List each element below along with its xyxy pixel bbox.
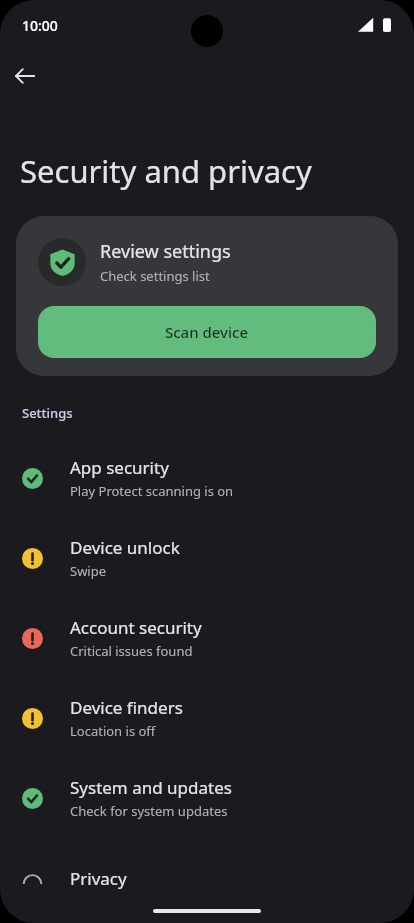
staticText: Security and privacy bbox=[20, 150, 312, 192]
staticText: Settings bbox=[22, 404, 73, 422]
button[interactable]: Device unlock bbox=[0, 518, 414, 598]
button[interactable]: Privacy bbox=[0, 838, 414, 918]
staticText: Scan device bbox=[165, 322, 249, 342]
staticText: Privacy bbox=[70, 867, 127, 890]
staticText: Location is off bbox=[70, 722, 156, 740]
staticText: Check for system updates bbox=[70, 802, 228, 820]
staticText: Device finders bbox=[70, 696, 183, 719]
staticText: Review settings bbox=[100, 239, 231, 264]
button[interactable]: Scan device bbox=[38, 306, 376, 358]
staticText: Swipe bbox=[70, 562, 107, 580]
button[interactable]: Device finders bbox=[0, 678, 414, 758]
staticText: Device unlock bbox=[70, 536, 180, 559]
button[interactable]: System and updates bbox=[0, 758, 414, 838]
button[interactable]: Account security bbox=[0, 598, 414, 678]
button[interactable]: Back bbox=[5, 56, 45, 96]
button[interactable]: Review settings bbox=[16, 216, 398, 376]
button[interactable]: App security bbox=[0, 438, 414, 518]
staticText: App security bbox=[70, 456, 169, 479]
staticText: Account security bbox=[70, 616, 202, 639]
staticText: Check settings list bbox=[100, 267, 210, 285]
staticText: System and updates bbox=[70, 776, 232, 799]
staticText: Critical issues found bbox=[70, 642, 193, 660]
staticText: Play Protect scanning is on bbox=[70, 482, 234, 500]
staticText: 10:00 bbox=[22, 16, 58, 35]
